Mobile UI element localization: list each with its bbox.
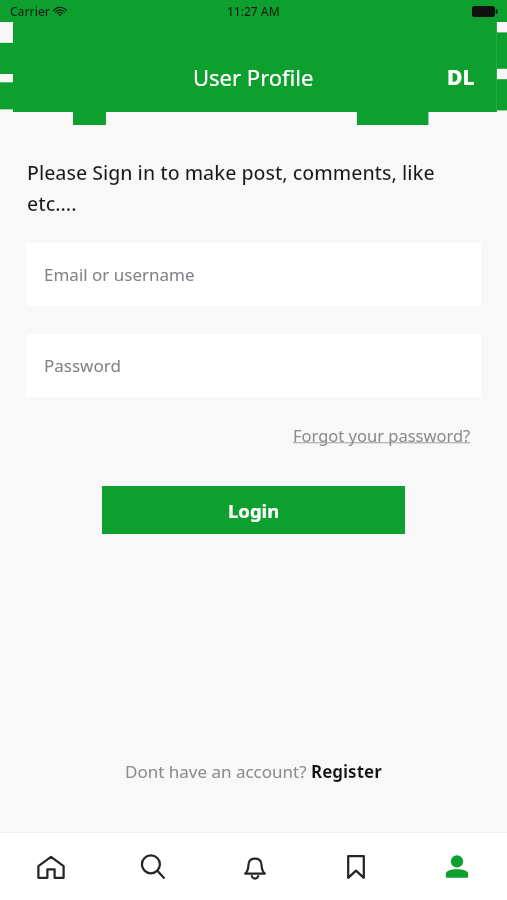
button[interactable]: Notifications — [204, 833, 305, 900]
button[interactable]: Login — [102, 486, 405, 534]
button[interactable]: Password — [26, 334, 481, 397]
staticText: Password — [44, 354, 121, 377]
staticText: Login — [228, 498, 280, 523]
staticText: Forgot your password? — [293, 424, 471, 446]
staticText: Email or username — [44, 263, 195, 286]
staticText: Carrier — [10, 3, 50, 19]
staticText: 11:27 AM — [227, 3, 280, 19]
button[interactable]: Home — [0, 833, 102, 900]
staticText: Dont have an account? Register — [125, 760, 382, 783]
staticText: User Profile — [193, 62, 314, 92]
button[interactable]: Search — [102, 833, 204, 900]
button[interactable]: Profile — [406, 833, 507, 900]
button[interactable]: DL logo — [445, 61, 477, 94]
staticText: DL — [447, 63, 475, 92]
button[interactable]: Dont have an account? Register — [0, 754, 507, 789]
button[interactable]: Forgot your password? — [291, 420, 473, 450]
button[interactable]: Email or username — [26, 243, 481, 306]
staticText: Please Sign in to make post, comments, l… — [27, 159, 477, 217]
button[interactable]: Bookmarks — [305, 833, 406, 900]
